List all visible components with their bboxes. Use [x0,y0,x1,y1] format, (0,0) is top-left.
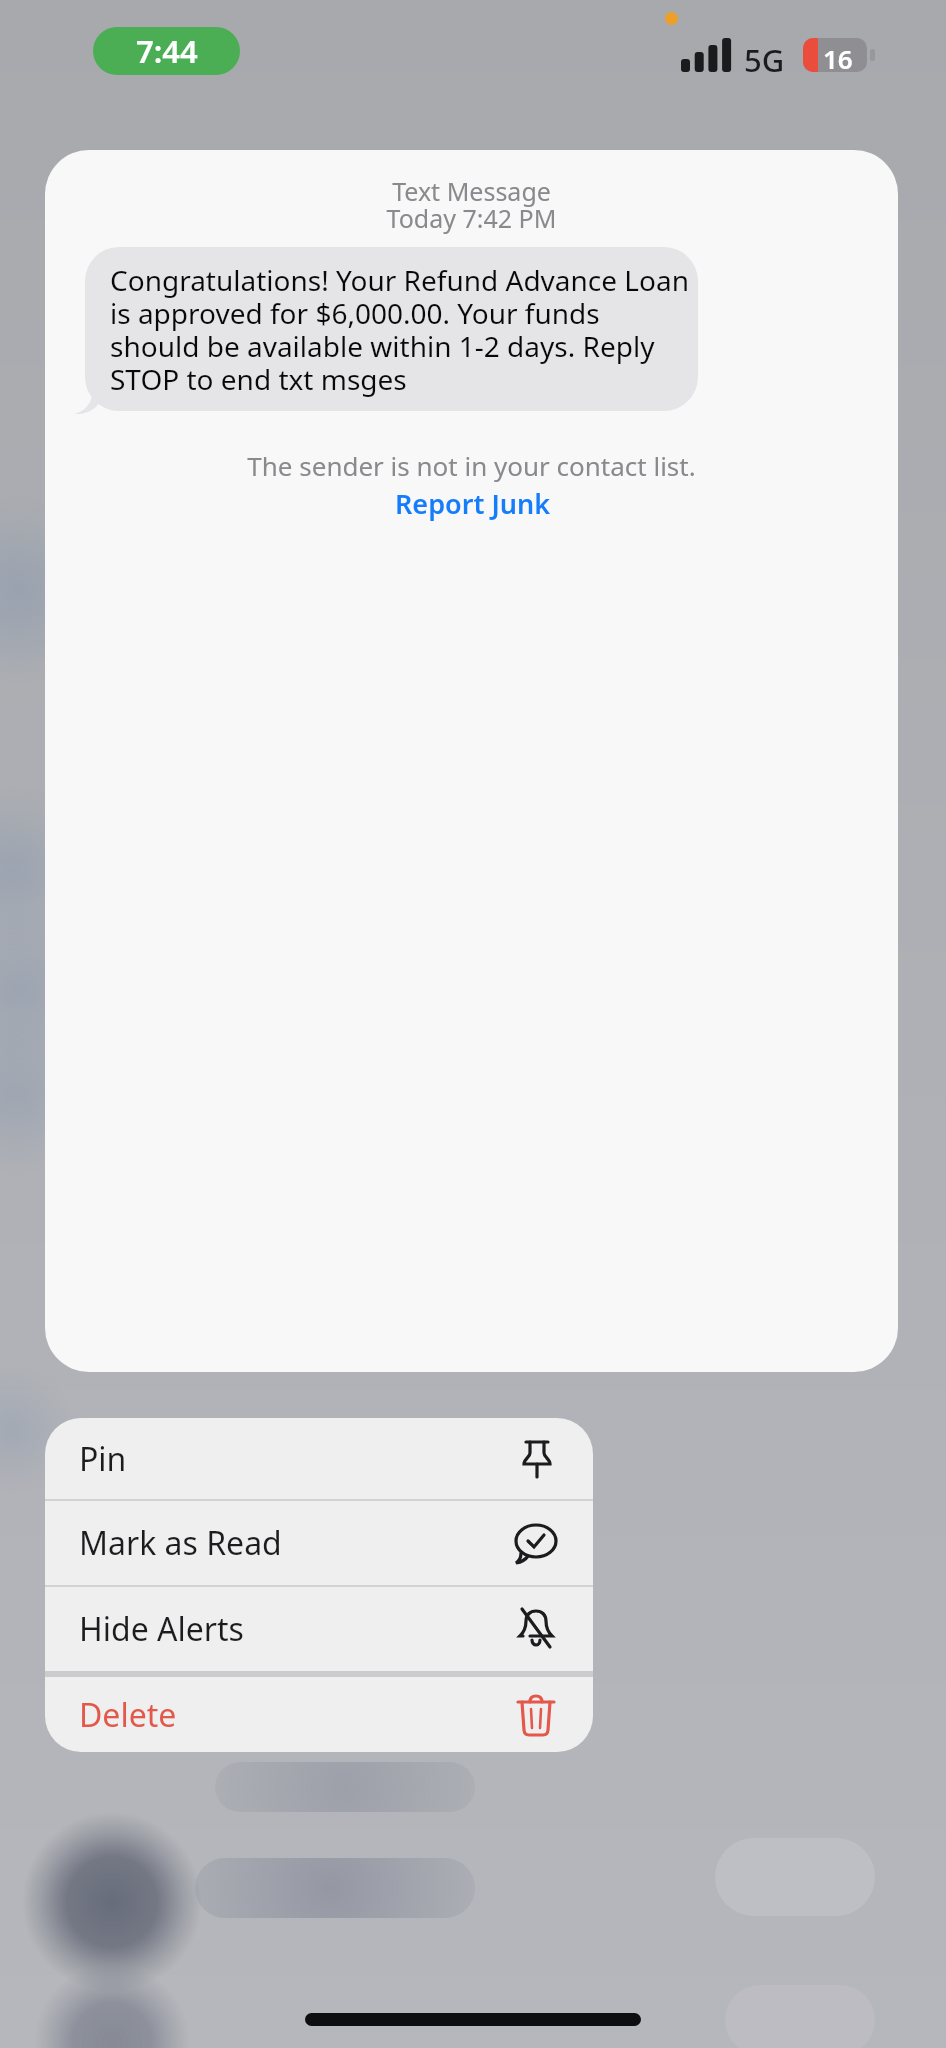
staticText: 5G [744,39,785,81]
staticText: Pin [79,1437,127,1481]
staticText: Mark as Read [79,1521,282,1565]
staticText: 16 [823,41,853,76]
staticText: Text Message Today 7:42 PM [45,174,898,236]
staticText: Hide Alerts [79,1607,244,1651]
button[interactable]: Hide Alerts [45,1587,593,1671]
button[interactable]: Report Junk [380,481,565,525]
button[interactable]: 7:44 [93,27,240,75]
staticText: The sender is not in your contact list. [45,448,898,483]
staticText: Congratulations! Your Refund Advance Loa… [110,261,689,398]
staticText: Report Junk [395,485,551,522]
staticText: 7:44 [136,30,198,72]
button[interactable]: Delete [45,1677,593,1752]
staticText: Delete [79,1693,177,1737]
button[interactable]: Mark as Read [45,1501,593,1585]
button[interactable]: Pin [45,1418,593,1499]
